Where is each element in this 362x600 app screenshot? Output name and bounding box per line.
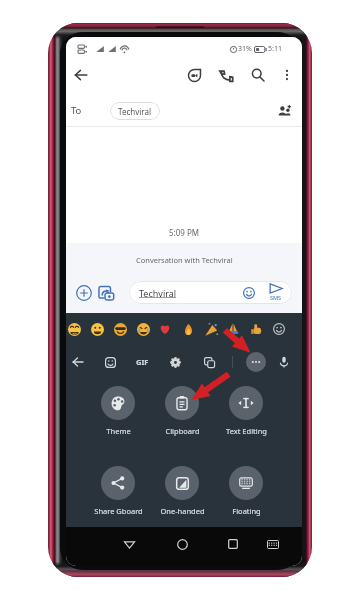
staticText: Clipboard — [165, 426, 200, 436]
button[interactable]: Share Gboard — [86, 466, 150, 516]
button[interactable]: Translate — [198, 351, 220, 373]
button[interactable]: Floating — [214, 466, 278, 516]
button[interactable]: Search — [245, 62, 271, 88]
staticText: Techviral — [139, 287, 177, 299]
staticText: One-handed — [160, 506, 205, 516]
button[interactable]: Emoji — [240, 284, 258, 302]
button[interactable]: GIF — [131, 350, 153, 374]
staticText: Conversation with Techviral — [136, 255, 233, 265]
staticText: Text Editing — [226, 426, 267, 436]
button[interactable]: More options — [276, 64, 298, 86]
staticText: 5:11 — [268, 44, 282, 54]
button[interactable]: Add contact — [272, 99, 296, 123]
staticText: SMS — [270, 294, 282, 301]
button[interactable]: Clipboard — [150, 386, 214, 436]
staticText: Techviral — [118, 106, 152, 117]
button[interactable]: Text Editing — [214, 386, 278, 436]
staticText: Floating — [232, 506, 261, 516]
button[interactable]: cry — [133, 317, 153, 341]
button[interactable]: thumbs up — [246, 317, 266, 341]
button[interactable]: Techviral — [129, 281, 292, 304]
button[interactable]: Send SMS — [267, 283, 285, 303]
button[interactable]: Video call — [181, 62, 207, 88]
button[interactable]: Recents — [220, 531, 246, 557]
button[interactable]: Keyboard — [260, 531, 286, 557]
staticText: GIF — [136, 357, 149, 367]
button[interactable]: One-handed — [150, 466, 214, 516]
button[interactable]: fire — [178, 317, 198, 341]
button[interactable]: Emoji picker — [269, 317, 289, 341]
button[interactable]: Back — [67, 351, 89, 373]
button[interactable]: cool — [110, 317, 130, 341]
button[interactable]: heart — [155, 317, 175, 341]
button[interactable]: Voice input — [273, 351, 295, 373]
button[interactable]: Stickers — [99, 351, 121, 373]
button[interactable]: Send image — [94, 281, 118, 305]
button[interactable]: Settings — [164, 351, 186, 373]
staticText: Share Gboard — [94, 506, 143, 516]
staticText: To — [71, 104, 82, 117]
button[interactable]: Home — [169, 531, 195, 557]
button[interactable]: laugh — [66, 317, 84, 341]
staticText: 5:09 PM — [169, 227, 200, 238]
button[interactable]: smile — [87, 317, 107, 341]
button[interactable]: Techviral — [110, 102, 160, 120]
staticText: 31% — [238, 44, 252, 54]
button[interactable]: Call — [213, 62, 239, 88]
staticText: Theme — [106, 426, 131, 436]
button[interactable]: Add attachment — [72, 281, 96, 305]
button[interactable]: Theme — [86, 386, 150, 436]
button[interactable]: More keyboard options — [246, 352, 266, 372]
button[interactable]: party — [201, 317, 221, 341]
button[interactable]: Back — [116, 531, 142, 557]
button[interactable]: Back — [68, 62, 94, 88]
button[interactable]: pray — [223, 317, 243, 341]
